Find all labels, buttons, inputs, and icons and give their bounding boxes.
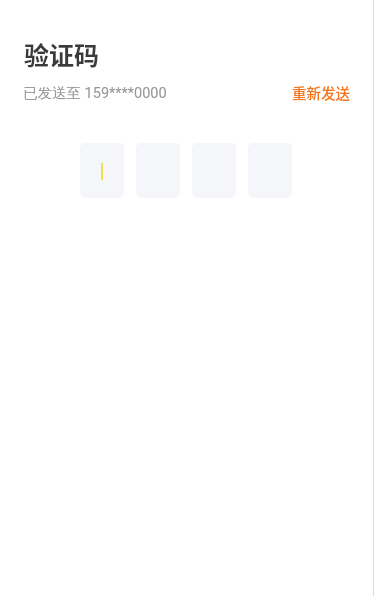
button[interactable]: 重新发送 [280,74,362,111]
staticText: 重新发送 [292,82,350,103]
staticText: 已发送至 159****0000 [23,84,167,102]
staticText: 验证码 [24,36,100,72]
button[interactable]: Verification code digit 1 [80,143,124,198]
